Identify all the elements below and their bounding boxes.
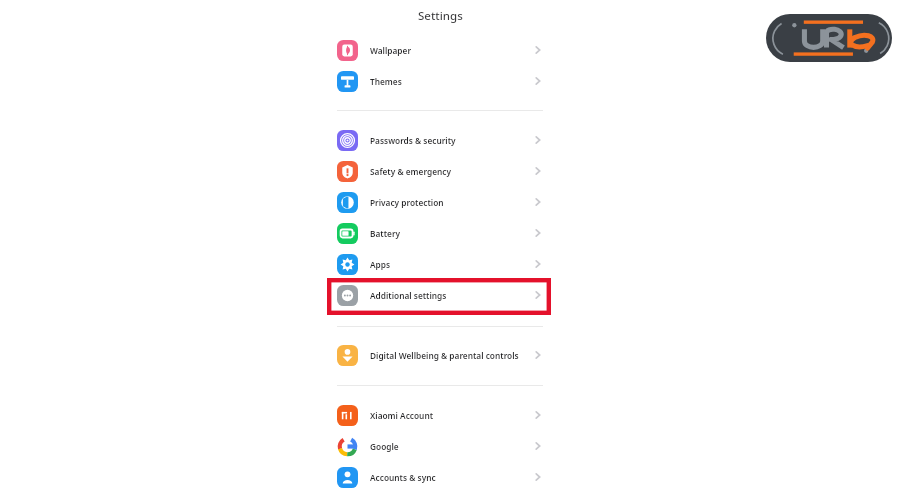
staticText: Accounts & sync [370,472,533,483]
staticText: Wallpaper [370,45,533,56]
button[interactable]: Apps [337,249,543,279]
button[interactable]: Wallpaper [337,35,543,65]
button[interactable]: Themes [337,66,543,96]
staticText: Themes [370,76,533,87]
staticText: Xiaomi Account [370,410,533,421]
other: Open Passwords & security [533,133,543,147]
staticText: Apps [370,259,533,270]
other: Open Accounts & sync [533,470,543,484]
button[interactable]: Digital Wellbeing & parental controls [337,340,543,370]
other: Open Digital Wellbeing & parental contro… [533,348,543,362]
staticText: Digital Wellbeing & parental controls [370,350,533,361]
staticText: Settings [418,8,463,24]
other: Open Themes [533,74,543,88]
other: Open Additional settings [533,288,543,302]
other: Open Battery [533,226,543,240]
staticText: Passwords & security [370,135,533,146]
staticText: Privacy protection [370,197,533,208]
staticText: Additional settings [370,290,533,301]
staticText: Safety & emergency [370,166,533,177]
button[interactable]: Passwords & security [337,125,543,155]
button[interactable]: Privacy protection [337,187,543,217]
other: Open Google [533,439,543,453]
other: Open Wallpaper [533,43,543,57]
other: Open Apps [533,257,543,271]
button[interactable]: Google [337,431,543,461]
button[interactable]: Battery [337,218,543,248]
button[interactable]: Accounts & sync [337,462,543,492]
other: Open Xiaomi Account [533,408,543,422]
button[interactable]: Safety & emergency [337,156,543,186]
button[interactable]: Xiaomi Account [337,400,543,430]
other: Open Safety & emergency [533,164,543,178]
staticText: Battery [370,228,533,239]
staticText: Google [370,441,533,452]
other: Open Privacy protection [533,195,543,209]
button[interactable]: Additional settings [337,280,543,310]
